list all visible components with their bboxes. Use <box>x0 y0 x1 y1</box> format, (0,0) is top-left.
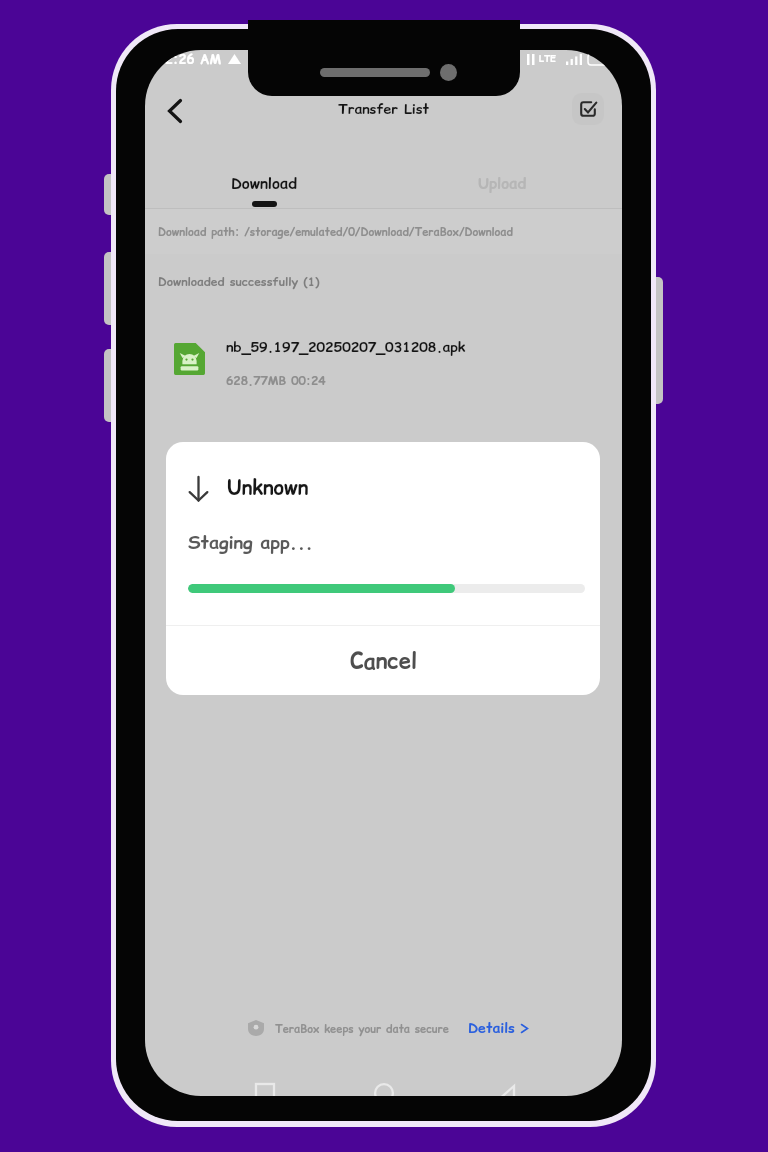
staticText: Transfer List <box>338 99 430 119</box>
button[interactable]: Select items <box>572 93 604 125</box>
button[interactable]: TeraBox keeps your data secure <box>248 1018 529 1038</box>
staticText: Download path: /storage/emulated/0/Downl… <box>158 224 513 239</box>
button[interactable]: Download <box>145 134 383 208</box>
staticText: Downloaded successfully (1) <box>158 273 320 290</box>
staticText: Unknown <box>227 474 309 502</box>
button[interactable]: nb_59.197_20250207_031208.apk <box>145 327 622 391</box>
staticText: Download <box>231 173 297 194</box>
staticText: Cancel <box>350 646 417 677</box>
staticText: Upload <box>478 173 527 194</box>
staticText: Details <box>468 1018 515 1038</box>
button[interactable]: Home <box>363 1072 405 1096</box>
staticText: Staging app... <box>188 530 314 555</box>
staticText: nb_59.197_20250207_031208.apk <box>226 337 466 357</box>
staticText: 628.77MB 00:24 <box>226 372 326 389</box>
button[interactable]: Back <box>154 90 196 132</box>
staticText: TeraBox keeps your data secure <box>275 1021 450 1036</box>
staticText: 12:26 AM <box>157 50 221 68</box>
staticText: LTE <box>539 53 556 66</box>
button[interactable]: Recents <box>244 1072 286 1096</box>
button[interactable]: Cancel <box>166 626 600 695</box>
button[interactable]: Back <box>484 1072 526 1096</box>
